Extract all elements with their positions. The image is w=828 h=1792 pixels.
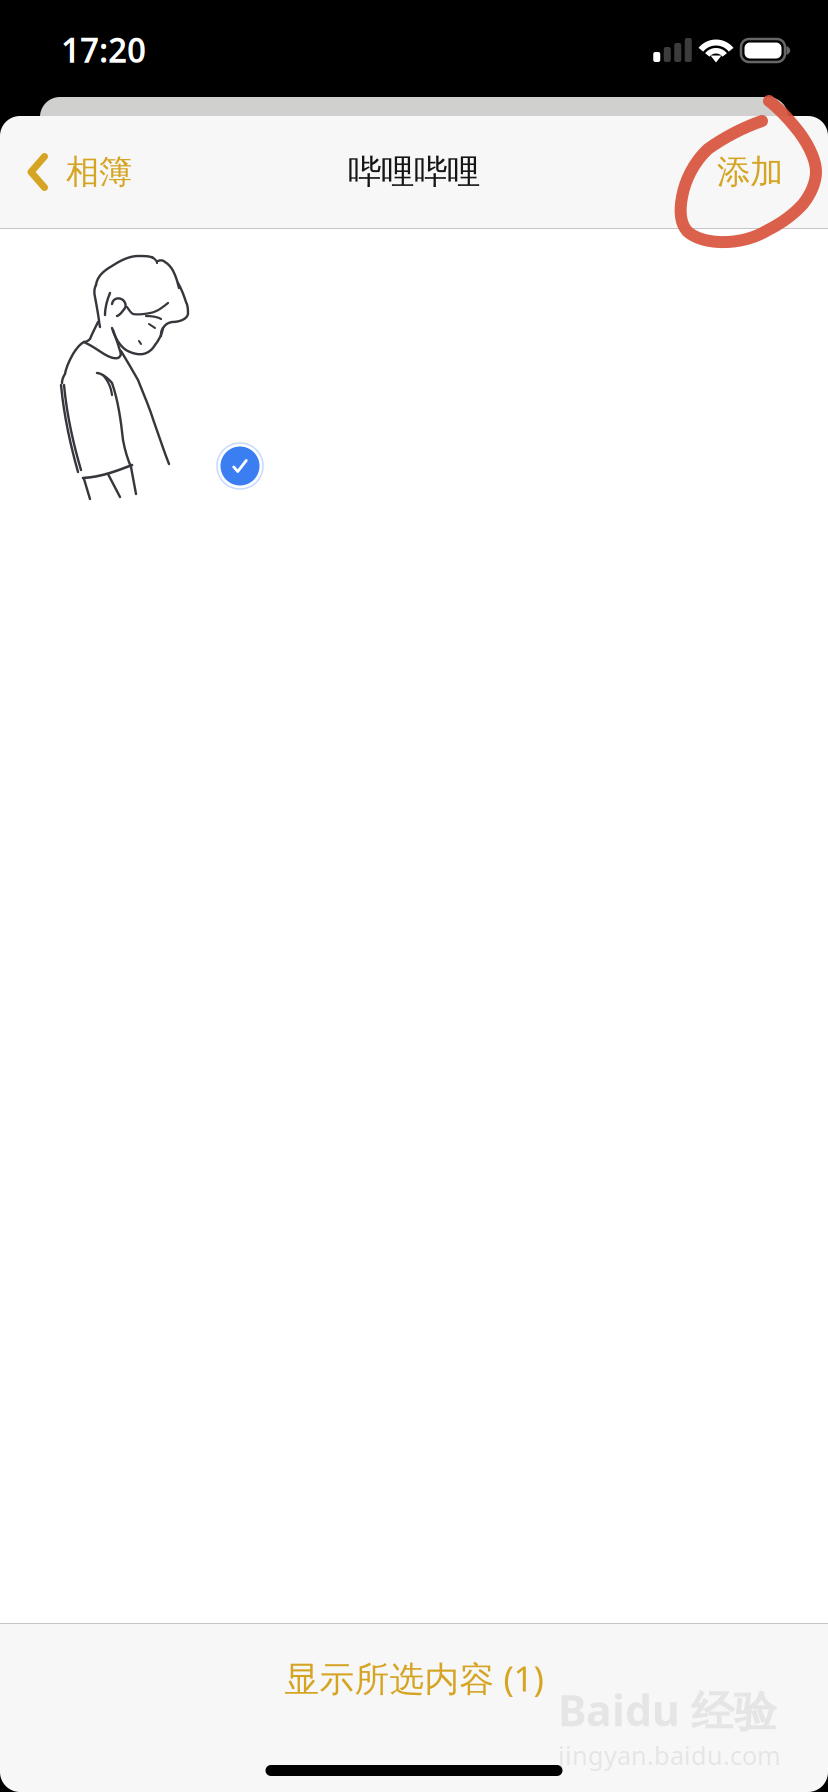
button[interactable]: 显示所选内容 (1)	[0, 1644, 828, 1712]
button[interactable]: 相簿	[0, 116, 148, 228]
staticText: 17:20	[61, 28, 146, 72]
staticText: 显示所选内容 (1)	[284, 1655, 543, 1701]
staticText: Baidu 经验	[558, 1681, 777, 1738]
staticText: 添加	[717, 151, 783, 192]
staticText: jingyan.baidu.com	[558, 1738, 781, 1772]
staticText: 哔哩哔哩	[348, 151, 480, 192]
staticText: 相簿	[66, 151, 132, 192]
button[interactable]: 添加	[695, 116, 828, 228]
